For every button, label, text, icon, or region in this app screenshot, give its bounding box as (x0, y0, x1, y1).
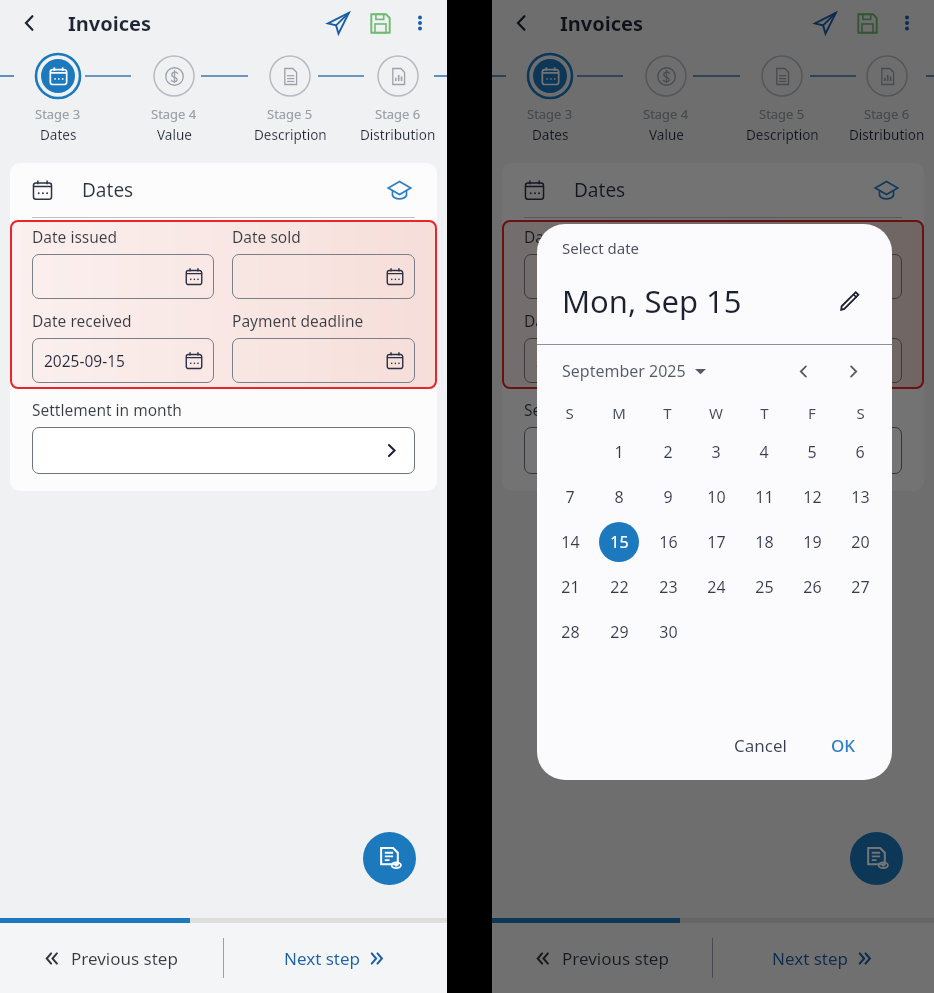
button[interactable]: 18 (744, 522, 784, 562)
button[interactable] (232, 338, 415, 383)
staticText: Dates (82, 177, 134, 203)
button[interactable]: Previous month (784, 352, 822, 390)
staticText: 12 (803, 486, 822, 508)
button[interactable]: 4 (744, 432, 784, 472)
staticText: 16 (659, 531, 678, 553)
button[interactable] (524, 254, 704, 299)
button[interactable]: 24 (696, 567, 736, 607)
button[interactable]: Send (804, 2, 846, 44)
button[interactable]: Save (359, 2, 401, 44)
button[interactable]: Stage 3 (0, 46, 116, 144)
button[interactable]: Dates (10, 163, 437, 217)
button[interactable]: 28 (550, 612, 590, 652)
staticText: Invoices (68, 10, 151, 37)
button[interactable]: 2 (648, 432, 688, 472)
button[interactable]: 8 (599, 477, 639, 517)
button[interactable]: More options (401, 4, 439, 42)
button[interactable]: Preview invoice (363, 832, 416, 885)
staticText: 23 (659, 576, 678, 598)
button[interactable]: 20 (840, 522, 880, 562)
button[interactable]: 21 (550, 567, 590, 607)
staticText: Stage 3 (527, 105, 573, 123)
button[interactable]: Dates (502, 163, 924, 217)
button[interactable]: OK (817, 725, 870, 766)
button[interactable]: Stage 5 (232, 46, 348, 144)
staticText: Next step (284, 947, 361, 970)
button[interactable]: 27 (840, 567, 880, 607)
staticText: Value (649, 126, 684, 144)
button[interactable] (722, 254, 902, 299)
button[interactable]: Edit date (830, 281, 870, 321)
button[interactable]: 26 (792, 567, 832, 607)
button[interactable]: Help (379, 170, 419, 210)
button[interactable]: 12 (792, 477, 832, 517)
button[interactable]: Stage 5 (724, 46, 840, 144)
button[interactable]: Previous step (0, 923, 223, 993)
button[interactable]: Next step (713, 923, 934, 993)
button[interactable]: 17 (696, 522, 736, 562)
button[interactable]: 19 (792, 522, 832, 562)
button[interactable]: Previous step (492, 923, 712, 993)
button[interactable]: 13 (840, 477, 880, 517)
staticText: Stage 5 (759, 105, 805, 123)
button[interactable]: 22 (599, 567, 639, 607)
button[interactable]: Stage 4 (116, 46, 232, 144)
staticText: Stage 5 (267, 105, 313, 123)
button[interactable]: 29 (599, 612, 639, 652)
staticText: S (856, 403, 865, 423)
staticText: 18 (755, 531, 774, 553)
button[interactable]: Stage 6 (840, 46, 934, 144)
button[interactable]: 15 (599, 522, 639, 562)
button[interactable]: 11 (744, 477, 784, 517)
button[interactable]: Stage 4 (608, 46, 724, 144)
button[interactable] (524, 427, 902, 474)
staticText: Stage 6 (864, 105, 910, 123)
button[interactable]: Help (866, 170, 906, 210)
button[interactable] (232, 254, 415, 299)
button[interactable] (722, 338, 902, 383)
button[interactable]: Cancel (720, 725, 801, 766)
staticText: 2025-09-15 (44, 350, 125, 371)
staticText: 9 (663, 486, 673, 508)
button[interactable]: 14 (550, 522, 590, 562)
button[interactable]: Stage 3 (492, 46, 608, 144)
staticText: 7 (565, 486, 575, 508)
button[interactable]: Save (846, 2, 888, 44)
button[interactable] (32, 254, 214, 299)
button[interactable]: 7 (550, 477, 590, 517)
button[interactable]: September 2025 (562, 360, 706, 382)
staticText: 6 (855, 441, 865, 463)
button[interactable]: 5 (792, 432, 832, 472)
button[interactable]: Next month (834, 352, 872, 390)
staticText: 4 (759, 441, 769, 463)
button[interactable]: 3 (696, 432, 736, 472)
button[interactable]: 9 (648, 477, 688, 517)
button[interactable]: Stage 6 (348, 46, 447, 144)
button[interactable]: Back (10, 3, 50, 43)
button[interactable]: 10 (696, 477, 736, 517)
staticText: M (612, 403, 626, 423)
button[interactable]: 23 (648, 567, 688, 607)
button[interactable]: More options (888, 4, 926, 42)
button[interactable]: Back (502, 3, 542, 43)
button[interactable]: 30 (648, 612, 688, 652)
staticText: Value (157, 126, 192, 144)
button[interactable]: Send (317, 2, 359, 44)
button[interactable]: Next step (224, 923, 447, 993)
staticText: Previous step (71, 947, 178, 970)
staticText: 13 (851, 486, 870, 508)
staticText: OK (831, 734, 856, 757)
button[interactable]: 2025-09-15 (524, 338, 704, 383)
button[interactable] (32, 427, 415, 474)
staticText: W (709, 403, 723, 423)
button[interactable]: 2025-09-15 (32, 338, 214, 383)
staticText: 22 (610, 576, 629, 598)
staticText: 1 (614, 441, 624, 463)
button[interactable]: 6 (840, 432, 880, 472)
staticText: Payment deadline (232, 310, 364, 331)
button[interactable]: 25 (744, 567, 784, 607)
button[interactable]: 1 (599, 432, 639, 472)
button[interactable]: Preview invoice (850, 832, 903, 885)
staticText: Stage 4 (151, 105, 197, 123)
button[interactable]: 16 (648, 522, 688, 562)
